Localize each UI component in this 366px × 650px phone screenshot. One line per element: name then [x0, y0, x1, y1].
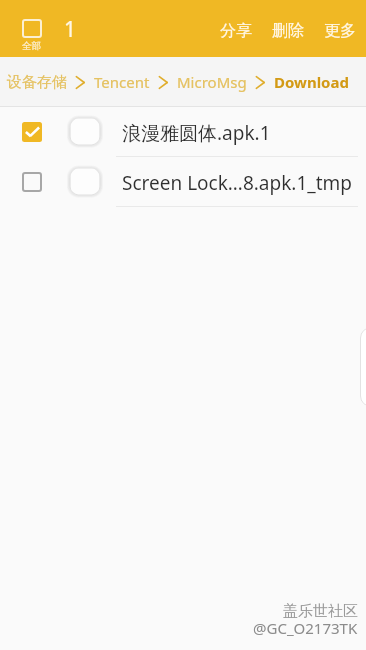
- button[interactable]: Tencent: [87, 64, 157, 100]
- staticText: Tencent: [94, 72, 150, 92]
- button[interactable]: Select Screen Lock…8.apk.1_tmp: [0, 157, 366, 207]
- staticText: 全部: [22, 40, 41, 52]
- staticText: 设备存储: [7, 73, 67, 92]
- button[interactable]: MicroMsg: [170, 64, 254, 100]
- button[interactable]: Deselect 浪漫雅圆体.apk.1: [0, 107, 67, 157]
- button[interactable]: Select all: [0, 0, 64, 57]
- button[interactable]: 分享: [210, 9, 262, 49]
- staticText: MicroMsg: [177, 72, 247, 92]
- staticText: 盖乐世社区: [283, 602, 358, 621]
- staticText: 更多: [324, 21, 356, 41]
- staticText: Download: [274, 72, 349, 92]
- button[interactable]: 更多: [314, 9, 366, 49]
- staticText: @GC_O2173TK: [253, 618, 358, 638]
- button[interactable]: 删除: [262, 9, 314, 49]
- staticText: 浪漫雅圆体.apk.1: [122, 120, 271, 146]
- button[interactable]: Download: [267, 64, 356, 100]
- staticText: 分享: [220, 21, 252, 41]
- button[interactable]: 设备存储: [0, 65, 74, 100]
- staticText: Screen Lock…8.apk.1_tmp: [122, 170, 353, 196]
- staticText: 1: [64, 15, 77, 44]
- button[interactable]: Select Screen Lock…8.apk.1_tmp: [0, 157, 67, 207]
- button[interactable]: Deselect 浪漫雅圆体.apk.1: [0, 107, 366, 157]
- staticText: 删除: [272, 21, 304, 41]
